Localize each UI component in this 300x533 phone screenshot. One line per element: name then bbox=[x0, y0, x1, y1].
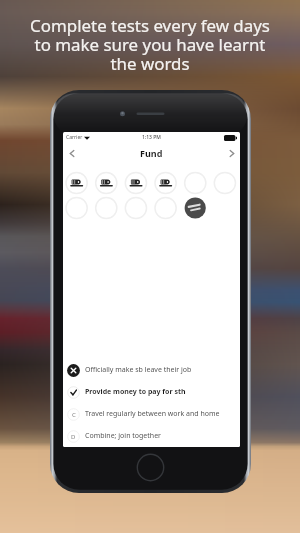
staticText: Complete tests every few days to make su… bbox=[30, 14, 270, 75]
button[interactable]: Next card bbox=[222, 144, 240, 162]
button[interactable]: Officially make sb leave their job bbox=[63, 359, 240, 381]
button[interactable]: Previous card bbox=[63, 144, 81, 162]
staticText: Provide money to pay for sth bbox=[85, 387, 186, 397]
staticText: Fund bbox=[140, 147, 163, 159]
button[interactable]: Provide money to pay for sth bbox=[63, 381, 240, 403]
button[interactable]: D bbox=[63, 425, 240, 447]
staticText: Travel regularly between work and home bbox=[85, 409, 220, 419]
staticText: Combine; join together bbox=[85, 431, 161, 441]
staticText: D bbox=[71, 433, 76, 441]
staticText: Officially make sb leave their job bbox=[85, 365, 192, 375]
staticText: Carrier bbox=[66, 134, 83, 141]
staticText: 1:13 PM bbox=[142, 134, 161, 141]
button[interactable]: C bbox=[63, 403, 240, 425]
staticText: C bbox=[72, 411, 76, 419]
